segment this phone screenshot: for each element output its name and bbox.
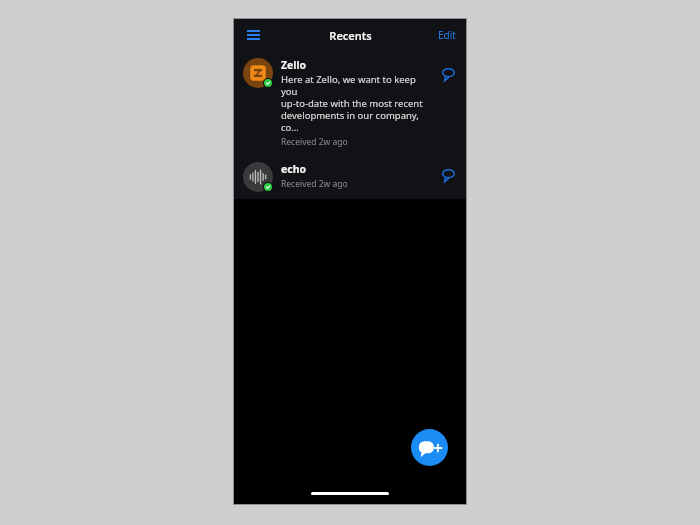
staticText: Received 2w ago: [281, 136, 348, 148]
button[interactable]: Zello: [234, 51, 466, 155]
button[interactable]: Edit: [428, 22, 466, 48]
button[interactable]: New message: [411, 429, 448, 466]
staticText: Zello: [281, 58, 307, 72]
staticText: Recents: [329, 28, 372, 43]
button[interactable]: echo: [234, 155, 466, 199]
button[interactable]: Menu: [242, 24, 264, 46]
button[interactable]: Open chat: [438, 165, 458, 185]
staticText: Here at Zello, we want to keep you up-to…: [281, 73, 432, 134]
button[interactable]: Open chat: [438, 64, 458, 84]
staticText: echo: [281, 162, 307, 176]
staticText: Edit: [438, 28, 456, 42]
staticText: Received 2w ago: [281, 178, 348, 190]
